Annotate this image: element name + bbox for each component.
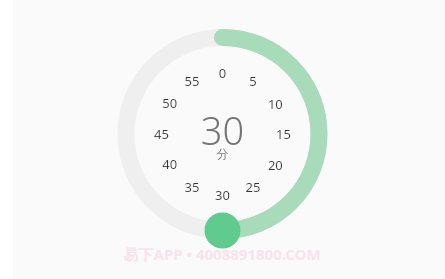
button[interactable]: Timer dial, 30 minutes bbox=[0, 0, 445, 279]
